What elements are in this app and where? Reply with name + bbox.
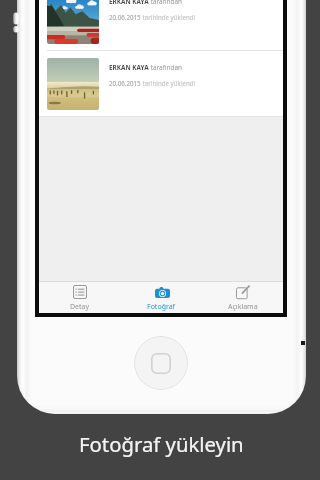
button[interactable]: Fotoğraf [121, 282, 202, 313]
staticText: tarihinde yüklendi [141, 79, 196, 87]
button[interactable]: Açıklama [202, 282, 283, 313]
staticText: tarihinde yüklendi [141, 13, 196, 21]
button[interactable]: ERKAN KAYA [39, 51, 283, 116]
button[interactable]: ERKAN KAYA [39, 0, 283, 50]
staticText: ERKAN KAYA [109, 0, 149, 6]
staticText: tarafından [149, 0, 182, 6]
button[interactable]: Home [134, 336, 188, 390]
staticText: Fotoğraf [147, 302, 176, 312]
button[interactable]: Detay [39, 282, 121, 313]
staticText: Açıklama [228, 302, 258, 312]
staticText: tarafından [149, 63, 182, 72]
staticText: 20.06.2015 [109, 79, 141, 87]
staticText: Detay [70, 302, 90, 312]
staticText: Fotoğraf yükleyin [79, 430, 244, 458]
staticText: 20.06.2015 [109, 13, 141, 21]
staticText: ERKAN KAYA [109, 63, 149, 72]
